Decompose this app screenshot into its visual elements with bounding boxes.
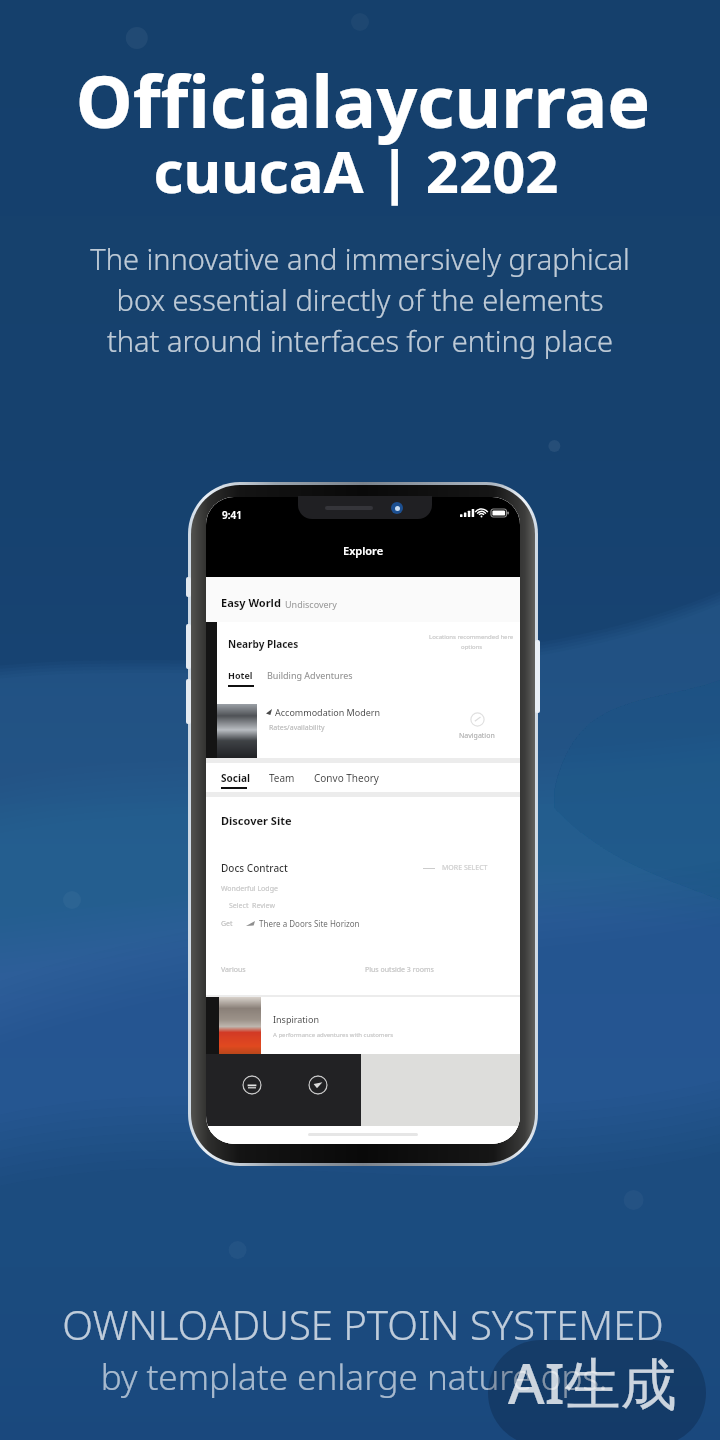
staticText: A performance adventures with customers [273, 1031, 394, 1039]
button[interactable]: Team [269, 771, 295, 785]
staticText: Navigation [459, 731, 495, 741]
staticText: Explore [343, 543, 384, 558]
staticText: Undiscovery [285, 598, 337, 610]
staticText: Docs Contract [221, 861, 288, 875]
staticText: Officialaycurrae [3, 51, 720, 149]
button[interactable]: Hotel [228, 669, 254, 687]
staticText: Nearby Places [228, 637, 299, 651]
button[interactable]: MORE SELECT [442, 863, 488, 873]
staticText: 9:41 [222, 508, 242, 522]
staticText: The innovative and immersively graphical… [36, 239, 684, 361]
button[interactable]: Convo Theory [314, 771, 379, 785]
staticText: Select Review [229, 901, 275, 911]
staticText: Accommodation Modern [275, 706, 381, 718]
staticText: Rates/availability [269, 723, 325, 733]
button[interactable]: Navigation [446, 704, 520, 741]
staticText: Get [221, 919, 233, 929]
staticText: Various [221, 965, 246, 975]
staticText: Wonderful Lodge [221, 884, 278, 894]
staticText: Easy World [221, 595, 281, 610]
button[interactable]: Easy World [206, 577, 520, 622]
staticText: There a Doors Site Horizon [259, 918, 360, 929]
button[interactable]: Building Adventures [267, 669, 353, 681]
staticText: Discover Site [221, 813, 292, 828]
staticText: Hotel [228, 669, 253, 681]
staticText: AI生成 [508, 1344, 677, 1420]
staticText: by template enlarge nature ops. [0, 1353, 714, 1401]
staticText: Locations recommended here [429, 633, 514, 641]
button[interactable]: Search [308, 1075, 328, 1095]
staticText: cuucaA | 2202 [0, 131, 716, 210]
button[interactable]: Inspiration [219, 997, 520, 1054]
staticText: options [461, 643, 483, 651]
staticText: Plus outside 3 rooms [365, 965, 434, 975]
staticText: Inspiration [273, 1013, 319, 1025]
staticText: OWNLOADUSE PTOIN SYSTEMED [3, 1297, 720, 1351]
button[interactable]: Home [242, 1075, 262, 1095]
button[interactable]: Accommodation Modern [217, 704, 520, 758]
button[interactable]: Social [221, 771, 250, 785]
